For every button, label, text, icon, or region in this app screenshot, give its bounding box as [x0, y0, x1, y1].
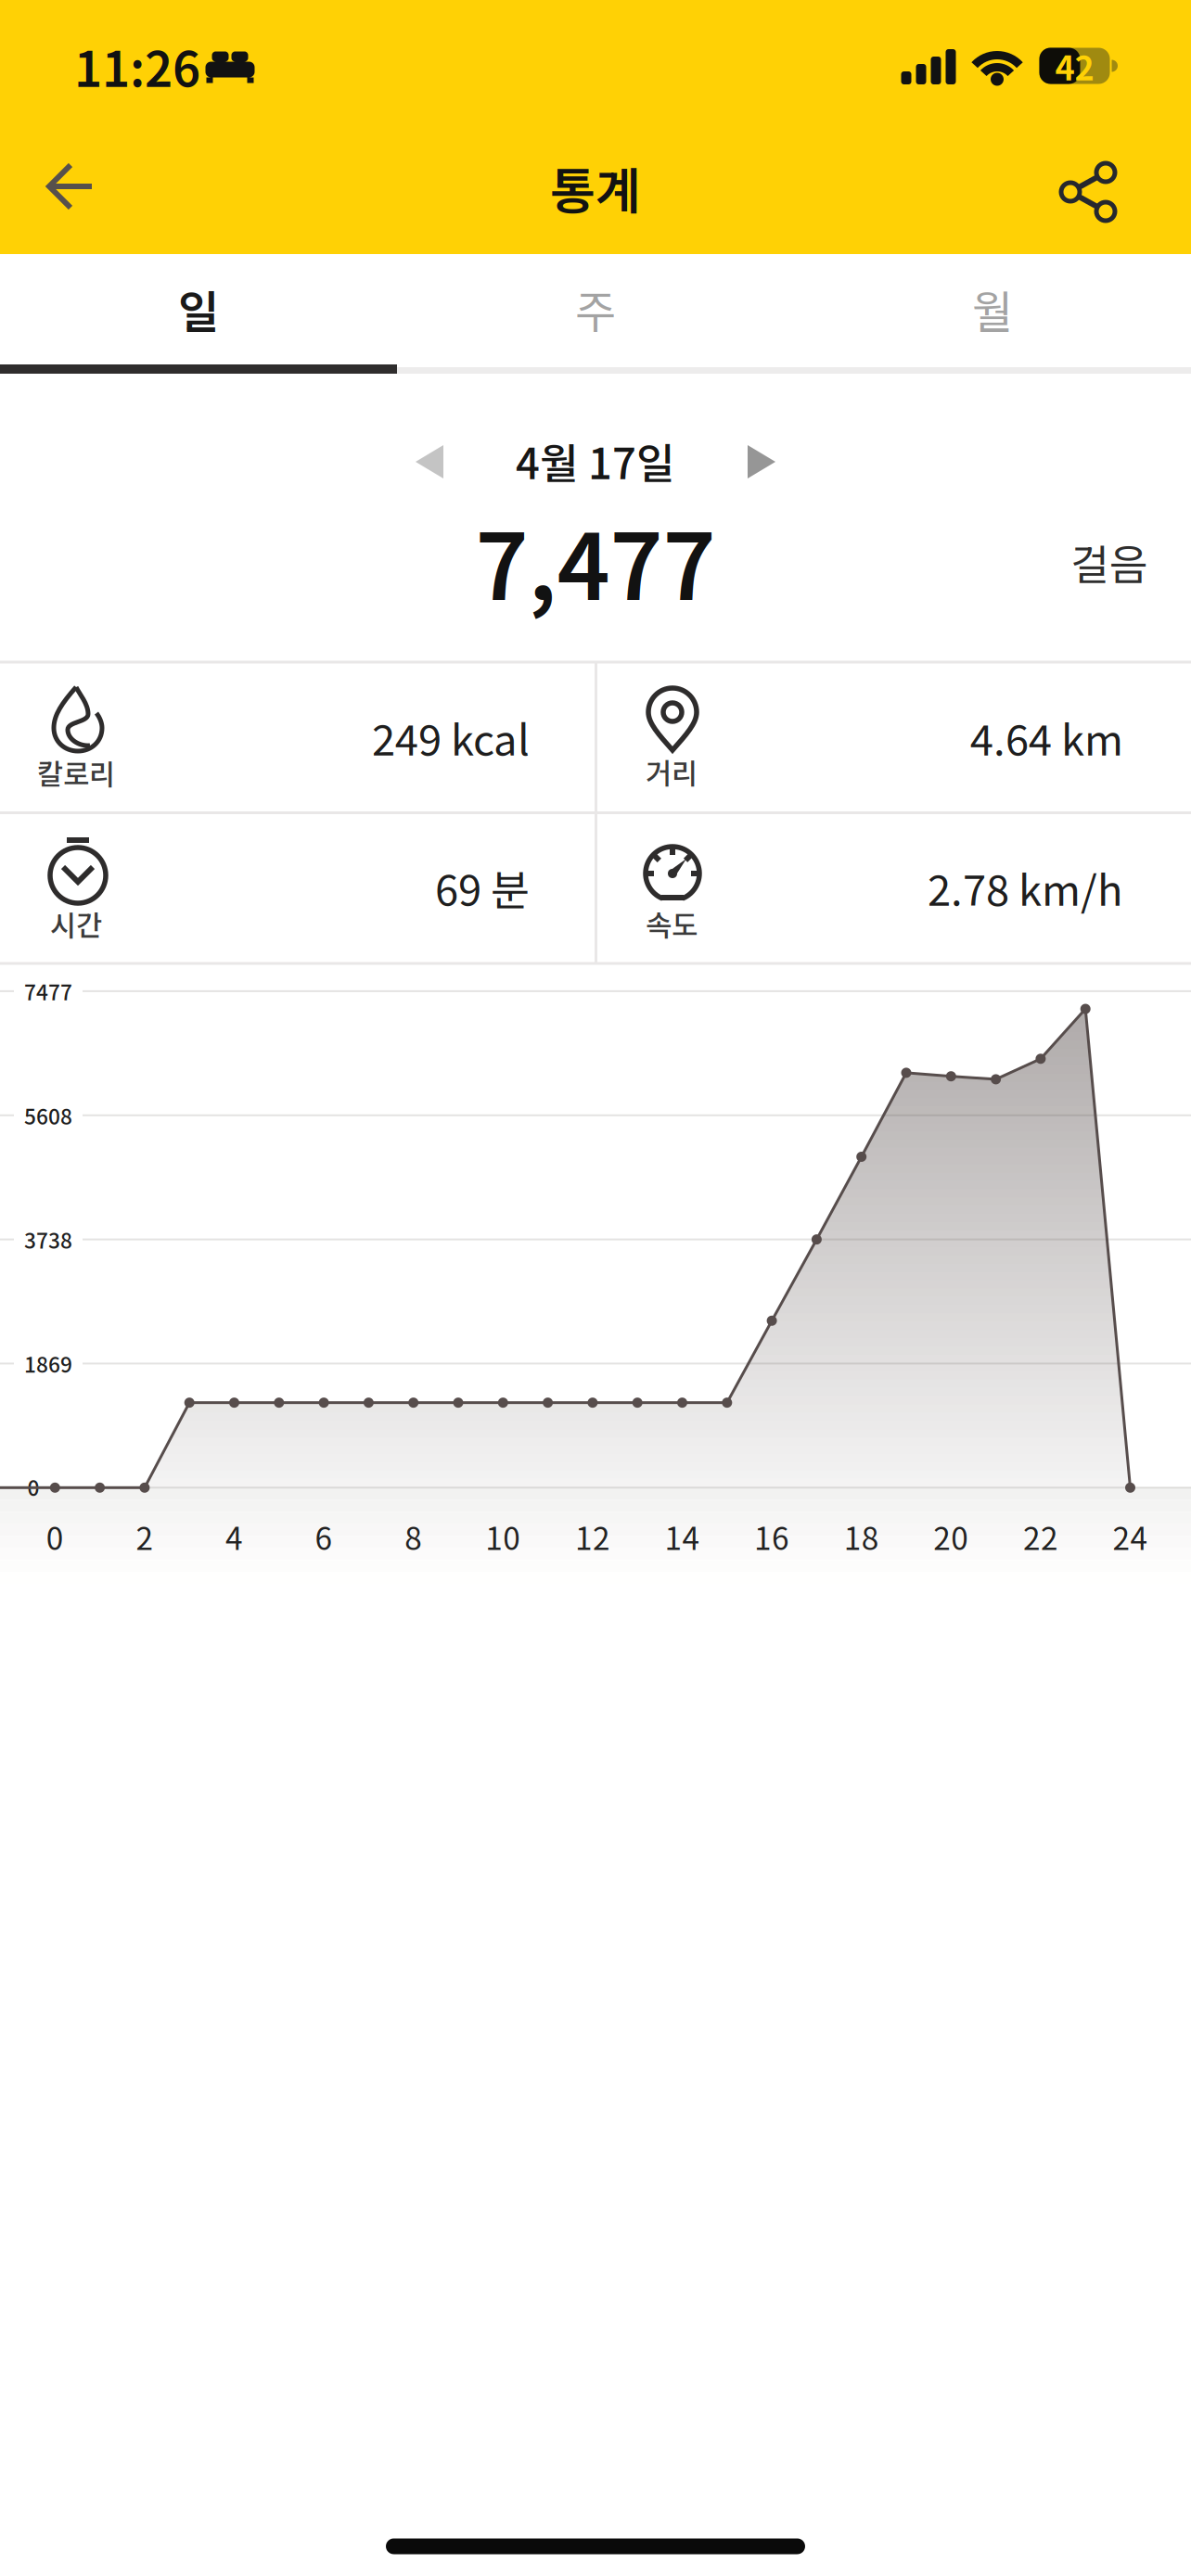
staticText: 4.64 km	[970, 707, 1123, 768]
staticText: 249 kcal	[372, 707, 530, 768]
staticText: 0	[27, 1472, 39, 1502]
staticText: 7,477	[475, 494, 716, 626]
staticText: 0	[46, 1514, 64, 1559]
button[interactable]: 일	[0, 253, 397, 364]
staticText: 5608	[24, 1100, 72, 1130]
button[interactable]: Previous day	[416, 445, 443, 478]
button[interactable]: 월	[794, 253, 1191, 364]
staticText: 12	[575, 1514, 610, 1559]
staticText: 거리	[646, 751, 698, 792]
staticText: 42	[1055, 42, 1094, 90]
staticText: 1869	[24, 1348, 72, 1379]
staticText: 속도	[646, 903, 698, 944]
staticText: 시간	[50, 903, 102, 944]
staticText: 8	[405, 1514, 422, 1559]
button[interactable]: Next day	[748, 445, 775, 478]
staticText: 4월 17일	[516, 430, 675, 491]
staticText: 18	[844, 1514, 879, 1559]
staticText: 69 분	[435, 857, 530, 918]
staticText: 칼로리	[37, 752, 115, 793]
staticText: 2	[136, 1514, 153, 1559]
staticText: 월	[972, 277, 1013, 341]
staticText: 22	[1023, 1514, 1058, 1559]
staticText: 10	[485, 1514, 521, 1559]
staticText: 일	[178, 277, 219, 341]
staticText: 6	[315, 1514, 333, 1559]
staticText: 11:26	[74, 31, 200, 101]
staticText: 통계	[550, 152, 641, 223]
staticText: 24	[1113, 1514, 1148, 1559]
staticText: 20	[933, 1514, 969, 1559]
button[interactable]: 주	[397, 253, 794, 364]
staticText: 16	[754, 1514, 789, 1559]
button[interactable]: Back	[28, 146, 111, 229]
staticText: 3738	[24, 1224, 72, 1255]
staticText: 걸음	[1070, 532, 1148, 592]
button[interactable]: Share	[1054, 155, 1128, 229]
staticText: 4	[225, 1514, 243, 1559]
staticText: 주	[575, 277, 616, 341]
staticText: 7477	[24, 976, 72, 1006]
staticText: 2.78 km/h	[928, 857, 1123, 918]
staticText: 14	[665, 1514, 700, 1559]
